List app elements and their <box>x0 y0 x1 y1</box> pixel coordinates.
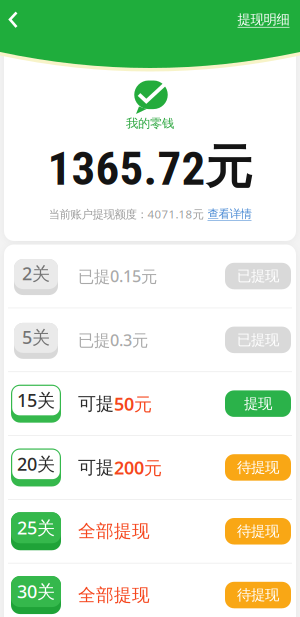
staticText: 可提 <box>78 456 114 479</box>
staticText: 已提现 <box>237 331 279 349</box>
staticText: 可提 <box>78 392 114 415</box>
staticText: 已提0.15元 <box>78 265 157 287</box>
button[interactable]: 查看详情 <box>207 207 251 221</box>
staticText: 当前账户提现额度：4071.18元 <box>48 206 203 222</box>
staticText: 5关 <box>22 325 50 349</box>
staticText: 我的零钱 <box>126 116 174 131</box>
staticText: 30关 <box>17 579 55 603</box>
staticText: 50元 <box>114 391 152 416</box>
staticText: 已提0.3元 <box>78 329 148 351</box>
staticText: 待提现 <box>237 522 279 540</box>
staticText: 20关 <box>17 451 55 476</box>
staticText: 25关 <box>17 515 55 540</box>
button[interactable]: Back <box>0 0 30 40</box>
staticText: 待提现 <box>237 458 279 476</box>
staticText: 待提现 <box>237 586 279 604</box>
button[interactable]: 待提现 <box>225 454 291 481</box>
button[interactable]: 提现 <box>225 390 291 417</box>
staticText: 全部提现 <box>78 520 150 542</box>
staticText: 2关 <box>22 261 50 286</box>
button[interactable]: 已提现 <box>225 263 291 289</box>
button[interactable]: 提现明细 <box>237 11 289 28</box>
staticText: 提现明细 <box>237 11 289 28</box>
staticText: 200元 <box>114 455 162 480</box>
staticText: 已提现 <box>237 267 279 285</box>
button[interactable]: 待提现 <box>225 582 291 608</box>
staticText: 查看详情 <box>207 207 251 221</box>
button[interactable]: 待提现 <box>225 518 291 544</box>
staticText: 1365.72元 <box>47 137 252 197</box>
staticText: 全部提现 <box>78 584 150 606</box>
staticText: 提现 <box>244 395 272 413</box>
staticText: 15关 <box>17 388 55 412</box>
button[interactable]: 已提现 <box>225 327 291 353</box>
